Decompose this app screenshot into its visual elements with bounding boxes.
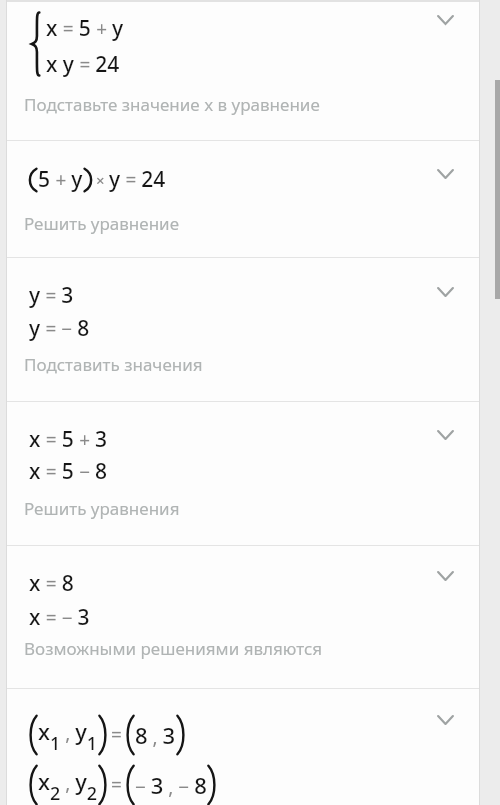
staticText: x2 , y2 <box>38 766 98 805</box>
staticText: x = 5 + y <box>46 14 124 43</box>
button[interactable]: x = 5 + 3 <box>7 402 479 545</box>
staticText: − 3 , − 8 <box>135 770 207 800</box>
button[interactable]: x1 , y1 <box>7 689 479 805</box>
staticText: y = 24 <box>109 165 166 194</box>
button[interactable]: x = 5 + y <box>7 2 479 140</box>
button[interactable]: 5 + y <box>7 141 479 257</box>
staticText: x = 5 + 3 <box>29 425 107 454</box>
staticText: 5 + y <box>38 165 83 194</box>
staticText: x y = 24 <box>46 50 120 79</box>
staticText: x = 8 <box>29 569 74 598</box>
staticText: Решить уравнение <box>24 212 180 235</box>
staticText: x = 5 − 8 <box>29 457 107 486</box>
staticText: x = − 3 <box>29 603 90 632</box>
button[interactable]: Expand step <box>423 0 467 42</box>
button[interactable]: Expand step <box>423 698 467 742</box>
staticText: = <box>111 772 122 798</box>
staticText: × <box>96 170 105 190</box>
staticText: x1 , y1 <box>38 716 98 755</box>
staticText: Решить уравнения <box>24 497 180 520</box>
staticText: Подставьте значение x в уравнение <box>24 93 320 116</box>
button[interactable]: Expand step <box>423 554 467 598</box>
staticText: = <box>111 722 122 748</box>
staticText: y = − 8 <box>29 314 90 343</box>
button[interactable]: Expand step <box>423 270 467 314</box>
staticText: y = 3 <box>29 281 74 310</box>
button[interactable]: x = 8 <box>7 546 479 688</box>
staticText: 8 , 3 <box>135 720 176 750</box>
button[interactable]: Expand step <box>423 413 467 457</box>
button[interactable]: y = 3 <box>7 258 479 401</box>
staticText: Возможными решениями являются <box>24 637 322 660</box>
button[interactable]: Expand step <box>423 152 467 196</box>
staticText: Подставить значения <box>24 353 203 376</box>
